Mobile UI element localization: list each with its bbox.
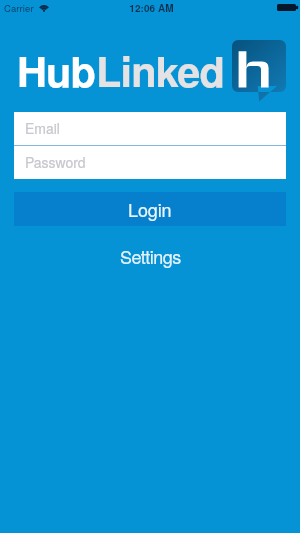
staticText: 12:06 AM bbox=[129, 1, 174, 15]
other: HubLinked logo bbox=[232, 40, 286, 102]
staticText: Carrier bbox=[4, 1, 34, 15]
staticText: Login bbox=[128, 196, 172, 222]
other: Battery full bbox=[277, 4, 298, 11]
button[interactable]: Password bbox=[14, 146, 286, 179]
other: Wi-Fi bbox=[39, 4, 49, 11]
staticText: Settings bbox=[120, 243, 181, 269]
staticText: Email bbox=[25, 118, 60, 138]
button[interactable]: Login bbox=[14, 192, 286, 226]
staticText: Linked bbox=[96, 40, 225, 99]
staticText: Hub bbox=[17, 40, 96, 99]
staticText: Password bbox=[25, 152, 86, 172]
button[interactable]: Settings bbox=[14, 241, 286, 271]
button[interactable]: Email bbox=[14, 112, 286, 145]
